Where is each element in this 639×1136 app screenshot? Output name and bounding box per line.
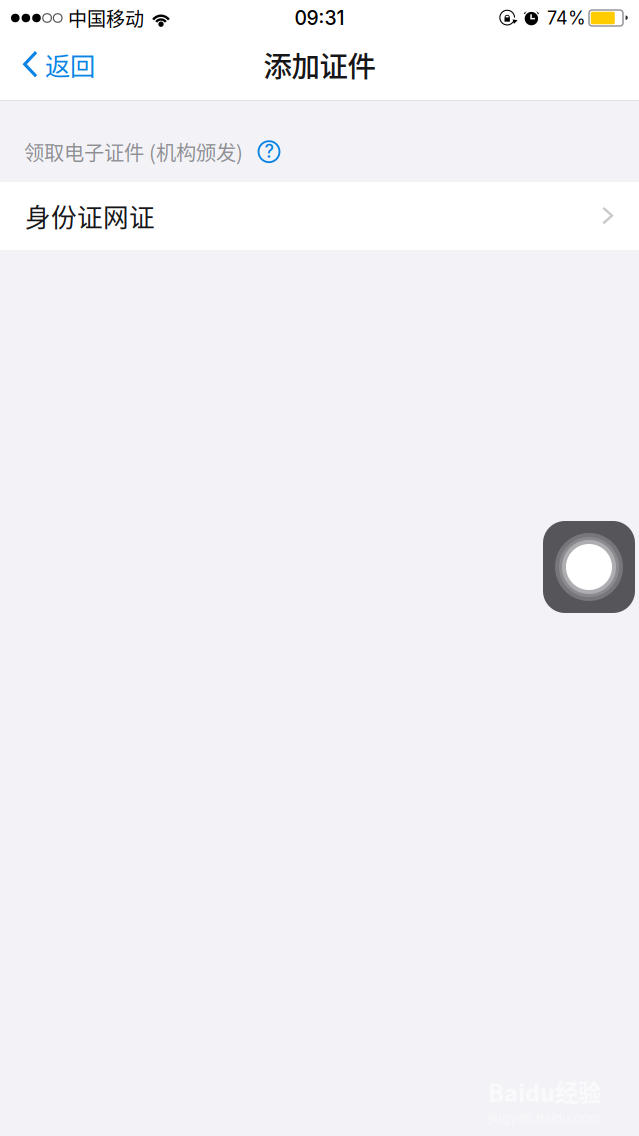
button[interactable]: 返回 [0,42,109,94]
staticText: ? [264,140,273,162]
staticText: 返回 [45,46,95,83]
staticText: 中国移动 [68,4,144,32]
staticText: 74% [547,7,586,29]
staticText: 领取电子证件 (机构颁发) [24,137,243,166]
staticText: 身份证网证 [25,197,155,235]
staticText: 09:31 [294,6,344,30]
button[interactable]: 身份证网证 [0,182,639,250]
button[interactable]: 帮助 [243,141,280,163]
staticText: 添加证件 [263,44,375,85]
